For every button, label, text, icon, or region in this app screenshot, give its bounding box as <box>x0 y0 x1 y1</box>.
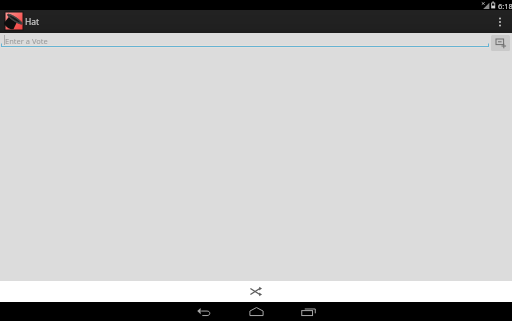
button[interactable]: Back <box>189 302 219 321</box>
staticText: 6:18 <box>498 1 512 11</box>
button[interactable]: Recents <box>293 302 323 321</box>
button[interactable]: Shuffle <box>236 281 276 302</box>
staticText: Hat <box>25 16 40 28</box>
button[interactable]: More options <box>488 10 512 33</box>
button[interactable]: Add vote <box>491 35 510 51</box>
button[interactable]: Home <box>241 302 271 321</box>
button[interactable]: Enter a Vote <box>0 33 490 53</box>
staticText: Enter a Vote <box>5 36 48 46</box>
